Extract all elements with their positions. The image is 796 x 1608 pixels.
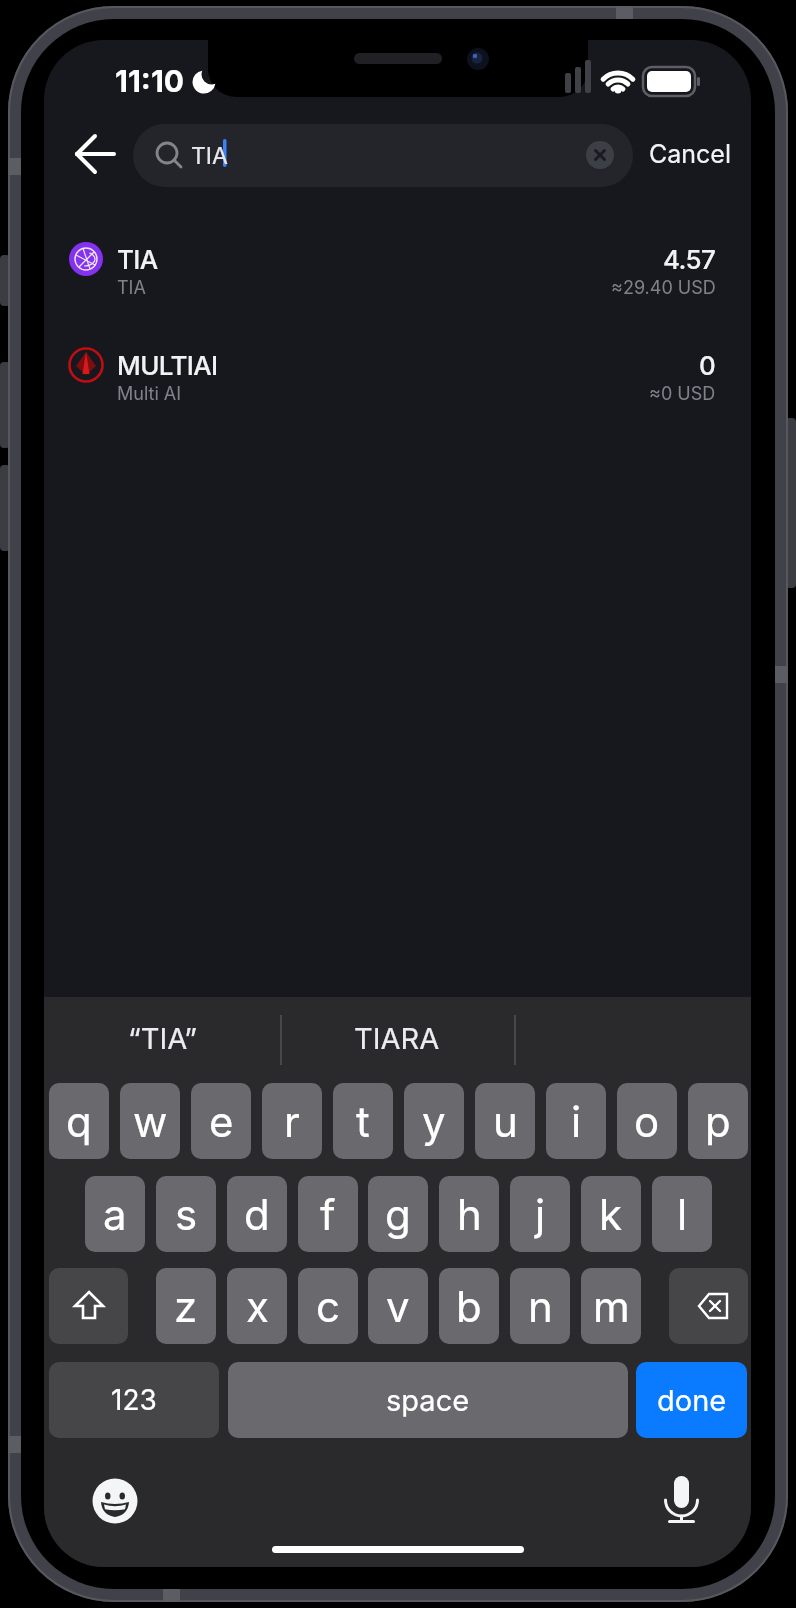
- button[interactable]: i: [546, 1083, 606, 1159]
- staticText: c: [316, 1281, 340, 1332]
- button[interactable]: w: [120, 1083, 180, 1159]
- staticText: y: [422, 1096, 446, 1147]
- staticText: Cancel: [649, 139, 731, 169]
- staticText: t: [356, 1096, 370, 1147]
- button[interactable]: b: [439, 1268, 499, 1344]
- staticText: g: [385, 1189, 411, 1240]
- button[interactable]: f: [298, 1176, 358, 1252]
- staticText: r: [284, 1096, 300, 1147]
- staticText: l: [677, 1189, 688, 1240]
- button[interactable]: [64, 126, 124, 182]
- button[interactable]: y: [404, 1083, 464, 1159]
- button[interactable]: v: [368, 1268, 428, 1344]
- button[interactable]: k: [581, 1176, 641, 1252]
- button[interactable]: space: [228, 1362, 628, 1438]
- button[interactable]: d: [227, 1176, 287, 1252]
- staticText: x: [246, 1281, 269, 1332]
- staticText: space: [386, 1383, 470, 1418]
- button[interactable]: [669, 1268, 748, 1344]
- staticText: m: [593, 1281, 630, 1332]
- button[interactable]: MULTIAI: [44, 327, 751, 403]
- button[interactable]: a: [85, 1176, 145, 1252]
- button[interactable]: TIA: [44, 221, 751, 297]
- staticText: TIARA: [354, 1021, 440, 1056]
- button[interactable]: z: [156, 1268, 216, 1344]
- staticText: 123: [111, 1383, 157, 1417]
- button[interactable]: p: [688, 1083, 748, 1159]
- staticText: f: [320, 1189, 336, 1240]
- button[interactable]: j: [510, 1176, 570, 1252]
- staticText: h: [457, 1189, 482, 1240]
- staticText: u: [493, 1096, 518, 1147]
- staticText: done: [657, 1383, 727, 1418]
- staticText: 4.57: [663, 244, 716, 275]
- staticText: Multi AI: [117, 383, 182, 405]
- staticText: ≈29.40 USD: [611, 277, 716, 299]
- button[interactable]: n: [510, 1268, 570, 1344]
- button[interactable]: s: [156, 1176, 216, 1252]
- button[interactable]: Cancel: [640, 126, 740, 182]
- button[interactable]: r: [262, 1083, 322, 1159]
- staticText: ≈0 USD: [649, 383, 716, 405]
- button[interactable]: x: [227, 1268, 287, 1344]
- staticText: s: [175, 1189, 198, 1240]
- staticText: e: [209, 1096, 234, 1147]
- button[interactable]: g: [368, 1176, 428, 1252]
- staticText: 11:10: [115, 63, 185, 99]
- button[interactable]: e: [191, 1083, 251, 1159]
- staticText: w: [133, 1096, 168, 1147]
- button[interactable]: c: [298, 1268, 358, 1344]
- staticText: i: [571, 1096, 582, 1147]
- staticText: TIA: [117, 277, 146, 299]
- staticText: MULTIAI: [117, 350, 218, 381]
- button[interactable]: m: [581, 1268, 641, 1344]
- button[interactable]: done: [636, 1362, 747, 1438]
- staticText: b: [456, 1281, 482, 1332]
- staticText: z: [174, 1281, 198, 1332]
- button[interactable]: “TIA”: [88, 1015, 238, 1061]
- button[interactable]: l: [652, 1176, 712, 1252]
- staticText: p: [705, 1096, 731, 1147]
- staticText: 0: [699, 350, 716, 381]
- button[interactable]: u: [475, 1083, 535, 1159]
- button[interactable]: TIA: [133, 124, 633, 187]
- staticText: TIA: [191, 142, 228, 170]
- button[interactable]: t: [333, 1083, 393, 1159]
- button[interactable]: [49, 1268, 128, 1344]
- staticText: d: [244, 1189, 270, 1240]
- staticText: “TIA”: [128, 1021, 198, 1056]
- button[interactable]: 123: [49, 1362, 219, 1438]
- staticText: n: [528, 1281, 553, 1332]
- button[interactable]: TIARA: [322, 1015, 472, 1061]
- staticText: a: [103, 1189, 127, 1240]
- button[interactable]: o: [617, 1083, 677, 1159]
- staticText: k: [599, 1189, 623, 1240]
- staticText: v: [386, 1281, 410, 1332]
- staticText: o: [634, 1096, 660, 1147]
- staticText: j: [535, 1189, 546, 1240]
- button[interactable]: q: [49, 1083, 109, 1159]
- staticText: q: [66, 1096, 92, 1147]
- button[interactable]: h: [439, 1176, 499, 1252]
- staticText: TIA: [117, 244, 158, 275]
